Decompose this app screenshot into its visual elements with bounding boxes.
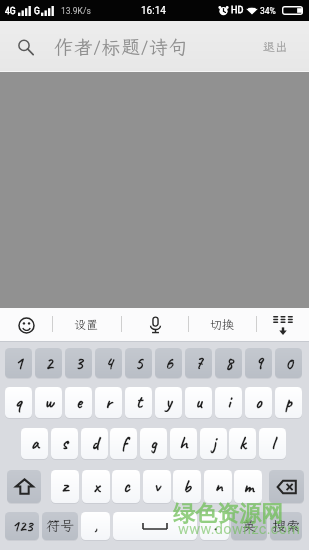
button[interactable]: 123 (5, 512, 39, 540)
staticText: 5 (135, 353, 143, 374)
staticText: 13.9K/s (61, 6, 91, 16)
button[interactable]: 符号 (42, 512, 78, 540)
staticText: m (243, 475, 254, 498)
staticText: f (121, 432, 127, 455)
staticText: 设置 (74, 317, 99, 333)
staticText: z (62, 475, 68, 498)
staticText: g (150, 432, 157, 455)
button[interactable]: f (110, 428, 137, 459)
button[interactable]: x (82, 470, 110, 503)
button[interactable]: 退出 (263, 39, 288, 55)
staticText: v (154, 475, 160, 498)
staticText: d (91, 432, 99, 455)
button[interactable]: d (81, 428, 108, 459)
button[interactable]: Space (113, 512, 197, 540)
other: Delete (269, 470, 304, 503)
button[interactable]: y (155, 387, 182, 418)
staticText: 4G (5, 6, 16, 16)
staticText: , (94, 516, 98, 536)
staticText: h (179, 432, 188, 455)
button[interactable]: 7 (185, 348, 212, 378)
button[interactable]: 4 (95, 348, 122, 378)
other: Shift (7, 470, 41, 503)
button[interactable]: q (5, 387, 32, 418)
button[interactable]: n (204, 470, 232, 503)
staticText: o (255, 391, 262, 414)
button[interactable]: 切换 (188, 308, 256, 342)
staticText: n (214, 475, 223, 498)
staticText: 123 (12, 517, 33, 536)
button[interactable]: 1 (5, 348, 32, 378)
staticText: 作者/标题/诗句 (54, 34, 189, 59)
button[interactable]: l (259, 428, 286, 459)
staticText: r (105, 391, 112, 414)
button[interactable]: h (170, 428, 197, 459)
button[interactable]: 3 (65, 348, 92, 378)
staticText: 0 (285, 353, 293, 374)
staticText: q (15, 391, 22, 414)
button[interactable]: 搜索 (270, 512, 302, 540)
button[interactable]: v (143, 470, 171, 503)
button[interactable]: Voice input (121, 308, 189, 342)
button[interactable]: p (275, 387, 302, 418)
staticText: 8 (225, 353, 233, 374)
staticText: 英 (242, 517, 256, 535)
button[interactable]: 9 (245, 348, 272, 378)
staticText: b (183, 475, 191, 498)
staticText: j (212, 432, 216, 455)
button[interactable]: 设置 (52, 308, 121, 342)
button[interactable]: g (140, 428, 167, 459)
button[interactable]: t (125, 387, 152, 418)
staticText: 7 (195, 353, 203, 374)
button[interactable]: 6 (155, 348, 182, 378)
staticText: 1 (15, 353, 23, 374)
staticText: u (195, 391, 202, 414)
button[interactable]: Emoji (0, 308, 52, 342)
button[interactable]: a (21, 428, 48, 459)
staticText: k (239, 432, 246, 455)
staticText: a (31, 432, 39, 455)
button[interactable]: w (35, 387, 62, 418)
staticText: 16:14 (141, 5, 166, 17)
staticText: 切换 (210, 317, 235, 333)
button[interactable]: , (81, 512, 110, 540)
button[interactable]: 2 (35, 348, 62, 378)
button[interactable]: Hide keyboard (256, 308, 309, 342)
staticText: 绿色资源网 (173, 500, 283, 528)
staticText: 34% (260, 6, 276, 16)
button[interactable]: j (200, 428, 227, 459)
button[interactable]: m (234, 470, 262, 503)
button[interactable]: e (65, 387, 92, 418)
button[interactable]: b (173, 470, 201, 503)
button[interactable]: c (112, 470, 140, 503)
staticText: t (136, 391, 142, 414)
staticText: e (76, 391, 82, 414)
button[interactable]: Shift (7, 470, 41, 503)
button[interactable]: r (95, 387, 122, 418)
button[interactable]: i (215, 387, 242, 418)
staticText: . (213, 516, 217, 536)
button[interactable]: s (51, 428, 78, 459)
button[interactable]: o (245, 387, 272, 418)
button[interactable]: 0 (275, 348, 302, 378)
staticText: 退出 (263, 39, 288, 55)
button[interactable]: . (200, 512, 229, 540)
staticText: 搜索 (272, 517, 300, 535)
staticText: c (123, 475, 130, 498)
button[interactable]: 英 (231, 512, 267, 540)
staticText: 6 (165, 353, 173, 374)
button[interactable]: k (229, 428, 256, 459)
button[interactable]: 5 (125, 348, 152, 378)
staticText: w (44, 391, 54, 414)
button[interactable]: z (51, 470, 79, 503)
staticText: i (227, 391, 231, 414)
button[interactable]: 8 (215, 348, 242, 378)
button[interactable]: Search (10, 32, 40, 62)
staticText: s (61, 432, 68, 455)
staticText: G (34, 6, 40, 16)
staticText: HD (231, 5, 244, 16)
staticText: p (285, 391, 292, 414)
button[interactable]: u (185, 387, 212, 418)
staticText: 4 (105, 353, 113, 374)
button[interactable]: Delete (269, 470, 304, 503)
